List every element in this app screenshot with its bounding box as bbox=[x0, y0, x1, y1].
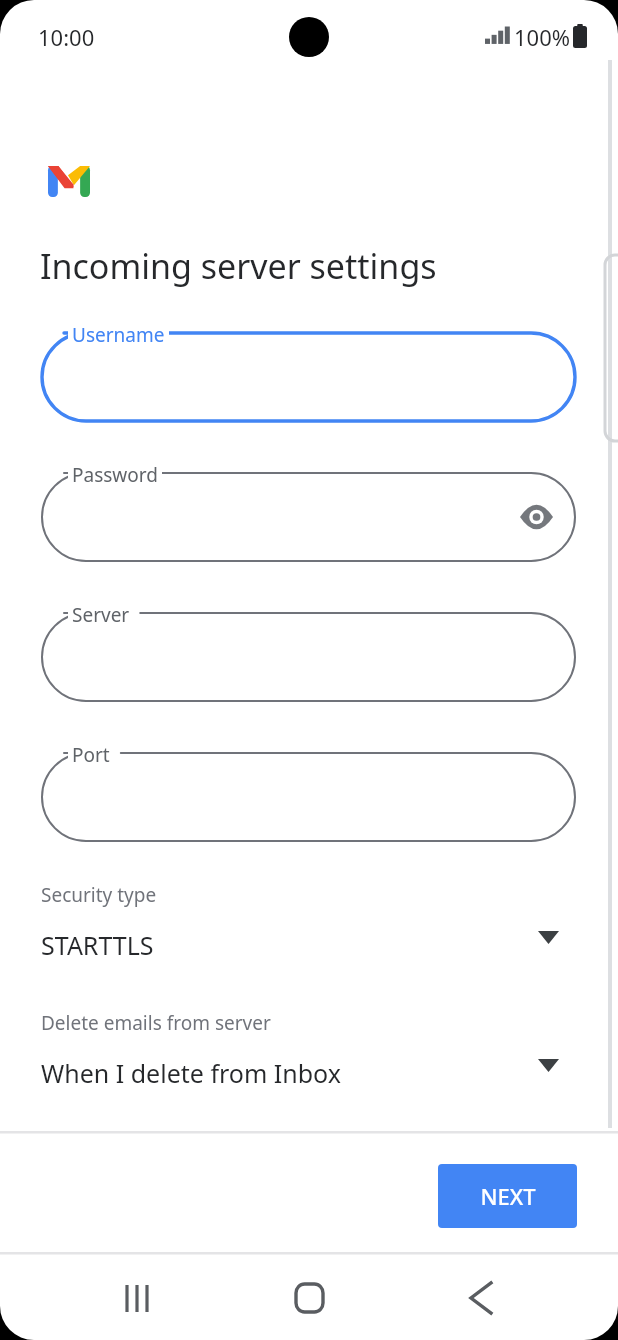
staticText: 10:00 bbox=[38, 22, 95, 52]
staticText: Security type bbox=[41, 882, 157, 908]
staticText: Password bbox=[72, 462, 158, 488]
button[interactable]: Username bbox=[42, 333, 575, 421]
staticText: Port bbox=[72, 742, 110, 768]
button[interactable]: Security type bbox=[0, 880, 618, 966]
button[interactable]: Back bbox=[454, 1271, 508, 1325]
staticText: Username bbox=[72, 322, 165, 348]
button[interactable]: Recent apps bbox=[110, 1271, 164, 1325]
button[interactable]: Server bbox=[42, 613, 575, 701]
button[interactable]: Show password bbox=[514, 495, 558, 539]
staticText: NEXT bbox=[480, 1181, 536, 1211]
staticText: 100% bbox=[514, 22, 571, 52]
staticText: STARTTLS bbox=[41, 928, 154, 962]
button[interactable]: Delete emails from server bbox=[0, 1008, 618, 1094]
staticText: Server bbox=[72, 602, 130, 628]
staticText: Incoming server settings bbox=[40, 243, 437, 289]
staticText: When I delete from Inbox bbox=[41, 1056, 341, 1090]
button[interactable]: Password bbox=[42, 473, 575, 561]
button[interactable]: NEXT bbox=[438, 1164, 577, 1228]
staticText: Delete emails from server bbox=[41, 1010, 271, 1036]
button[interactable]: Home bbox=[282, 1271, 336, 1325]
button[interactable]: Port bbox=[42, 753, 575, 841]
